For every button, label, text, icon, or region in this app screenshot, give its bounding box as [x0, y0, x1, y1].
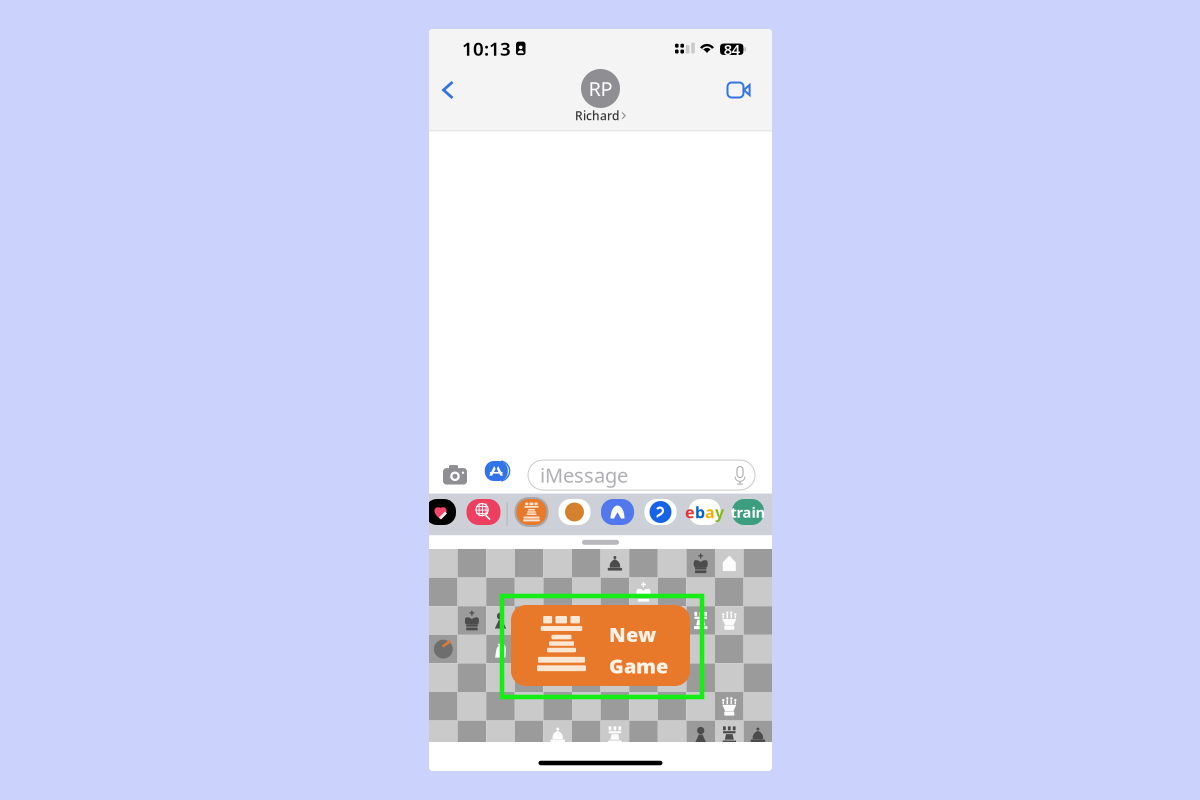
- button[interactable]: NordVPN: [600, 498, 635, 526]
- button[interactable]: FaceTime: [715, 80, 772, 121]
- staticText: New: [609, 621, 656, 647]
- button[interactable]: Trainline: [730, 498, 765, 526]
- staticText: e: [685, 501, 695, 523]
- staticText: a: [705, 501, 715, 523]
- staticText: Richard: [575, 107, 619, 123]
- staticText: b: [695, 501, 705, 523]
- button[interactable]: Image Search: [466, 498, 501, 526]
- staticText: Game: [609, 652, 668, 679]
- button[interactable]: eBay: [687, 498, 722, 526]
- button[interactable]: Camera: [442, 463, 467, 485]
- button[interactable]: Message field: [528, 460, 755, 490]
- button[interactable]: Apps: [484, 458, 511, 484]
- button[interactable]: Shazam: [643, 498, 678, 526]
- staticText: RP: [588, 75, 612, 102]
- staticText: train: [730, 502, 765, 522]
- button[interactable]: New: [511, 605, 690, 686]
- button[interactable]: RP: [575, 74, 626, 128]
- staticText: iMessage: [540, 462, 628, 488]
- staticText: 10:13: [462, 36, 511, 61]
- staticText: 84: [724, 39, 740, 59]
- button[interactable]: Chess: [512, 496, 550, 528]
- button[interactable]: Photo App: [557, 498, 592, 526]
- staticText: y: [715, 501, 724, 523]
- button[interactable]: Health: [424, 498, 456, 526]
- button[interactable]: Back: [429, 80, 465, 121]
